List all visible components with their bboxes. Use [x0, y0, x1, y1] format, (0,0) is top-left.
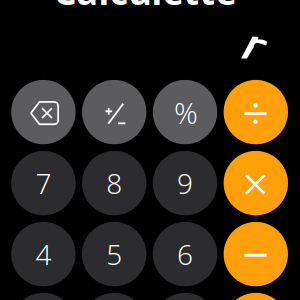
button[interactable]: 3	[153, 293, 217, 300]
button[interactable]: Plus	[224, 293, 288, 300]
staticText: %	[174, 93, 198, 132]
button[interactable]: 4	[11, 222, 76, 286]
staticText: 5	[106, 235, 122, 273]
staticText: 6	[177, 235, 193, 273]
button[interactable]: 5	[82, 222, 146, 286]
button[interactable]: 2	[82, 293, 146, 300]
staticText: 4	[35, 235, 51, 273]
button[interactable]: 1	[11, 293, 76, 300]
button[interactable]: 9	[153, 151, 217, 215]
staticText: 7	[35, 164, 51, 202]
button[interactable]: 6	[153, 222, 217, 286]
button[interactable]: Percent	[153, 80, 217, 144]
button[interactable]: Divide	[224, 80, 288, 144]
button[interactable]: Delete	[11, 80, 76, 144]
staticText: 8	[106, 164, 122, 202]
staticText: 9	[177, 164, 193, 202]
staticText: Calculette	[53, 0, 236, 15]
button[interactable]: Plus or minus	[82, 80, 146, 144]
button[interactable]: Minus	[224, 222, 288, 286]
button[interactable]: Multiply	[224, 151, 288, 215]
button[interactable]: 7	[11, 151, 76, 215]
button[interactable]: 8	[82, 151, 146, 215]
